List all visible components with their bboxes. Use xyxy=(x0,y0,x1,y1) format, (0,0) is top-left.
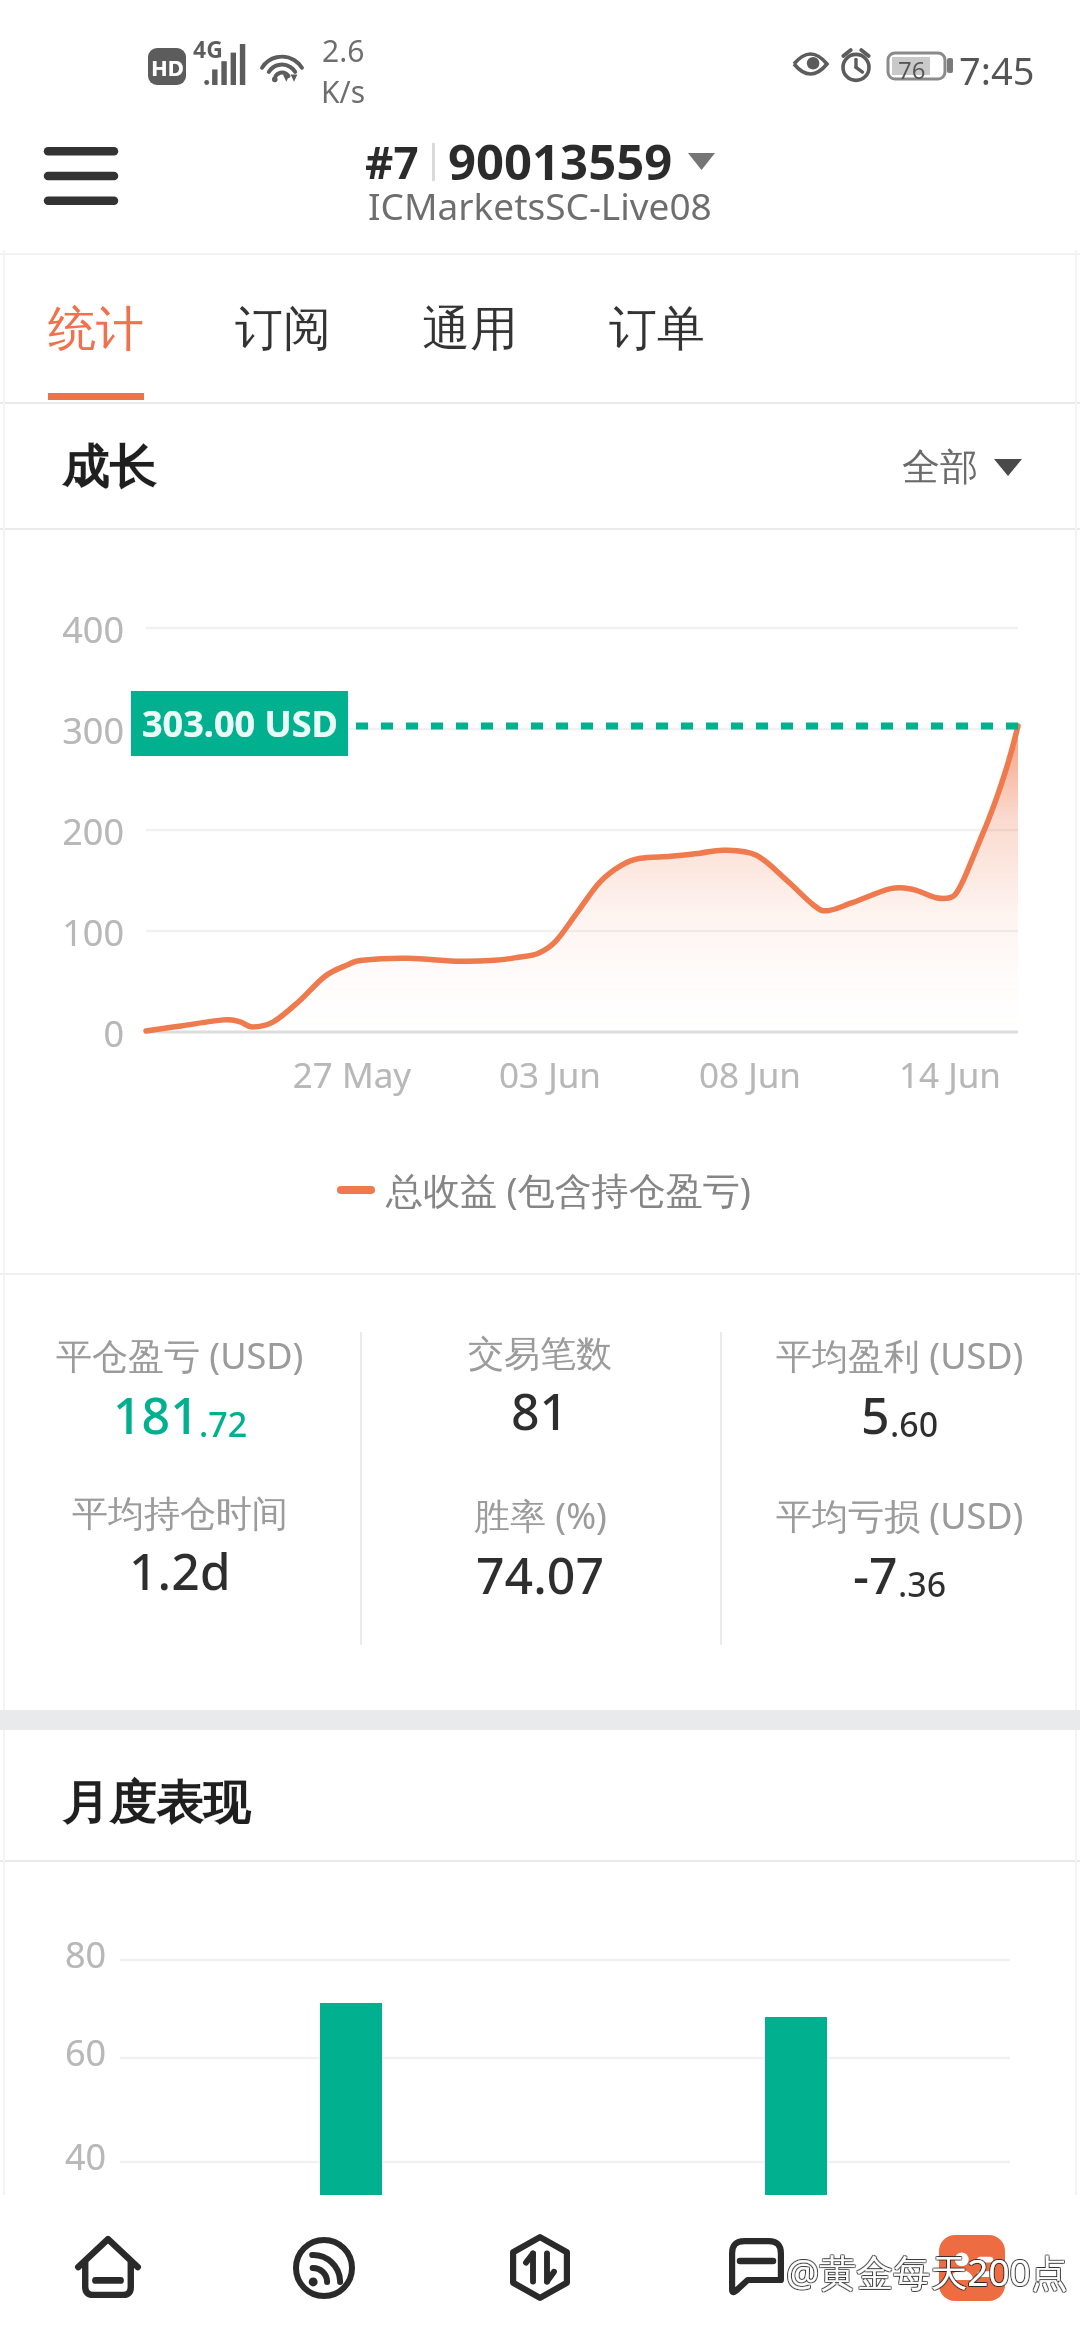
staticText: 14 Jun xyxy=(860,1051,1040,1099)
staticText: HD xyxy=(151,52,184,82)
button[interactable]: 订阅 xyxy=(235,255,331,404)
staticText: 总收益 (包含持仓盈亏) xyxy=(386,1164,751,1215)
staticText: #7 xyxy=(365,132,419,192)
button[interactable]: Trade xyxy=(432,2195,648,2340)
staticText: @黄金每天200点 xyxy=(786,2245,1068,2296)
staticText: 统计 xyxy=(48,299,144,359)
button[interactable]: 订单 xyxy=(609,255,705,404)
button[interactable]: Home xyxy=(0,2195,216,2340)
staticText: 303.00 USD xyxy=(142,699,338,748)
staticText: 5 xyxy=(861,1381,890,1449)
button[interactable]: #7 xyxy=(365,128,715,245)
staticText: 90013559 xyxy=(448,128,673,195)
staticText: 300 xyxy=(0,706,124,755)
staticText: @黄金每天200点 xyxy=(787,2247,1069,2298)
staticText: 订单 xyxy=(609,299,705,359)
staticText: @黄金每天200点 xyxy=(786,2247,1068,2298)
staticText: 月度表现 xyxy=(62,1774,250,1833)
staticText: .36 xyxy=(898,1561,947,1607)
staticText: 1.2d xyxy=(129,1537,231,1605)
button[interactable]: Menu xyxy=(28,123,133,228)
button[interactable]: 全部 xyxy=(902,443,1022,491)
staticText: -7 xyxy=(853,1541,898,1609)
staticText: 成长 xyxy=(62,438,156,497)
staticText: 交易笔数 xyxy=(468,1331,612,1376)
button[interactable]: Chat xyxy=(648,2195,864,2340)
staticText: 0 xyxy=(0,1009,124,1058)
staticText: 平均亏损 (USD) xyxy=(776,1491,1024,1540)
staticText: .72 xyxy=(199,1401,248,1447)
staticText: 胜率 (%) xyxy=(474,1491,607,1540)
staticText: @黄金每天200点 xyxy=(785,2247,1067,2298)
staticText: 80 xyxy=(65,1930,107,1979)
staticText: 4G xyxy=(193,33,223,64)
staticText: 2.6 xyxy=(322,30,365,71)
staticText: 27 May xyxy=(262,1051,442,1099)
staticText: 03 Jun xyxy=(460,1051,640,1099)
staticText: 74.07 xyxy=(476,1541,604,1609)
staticText: 400 xyxy=(0,605,124,654)
staticText: 订阅 xyxy=(235,299,331,359)
button[interactable]: Quotes xyxy=(216,2195,432,2340)
staticText: @黄金每天200点 xyxy=(787,2246,1069,2297)
staticText: ICMarketsSC-Live08 xyxy=(368,180,712,230)
staticText: K/s xyxy=(321,71,366,112)
staticText: 100 xyxy=(0,908,124,957)
button[interactable]: 统计 xyxy=(48,255,144,404)
staticText: 76 xyxy=(898,53,926,79)
staticText: 全部 xyxy=(902,443,978,491)
staticText: @黄金每天200点 xyxy=(785,2246,1067,2297)
staticText: 181 xyxy=(113,1381,199,1449)
staticText: 平均盈利 (USD) xyxy=(776,1331,1024,1380)
staticText: 08 Jun xyxy=(660,1051,840,1099)
button[interactable]: Profile xyxy=(864,2195,1080,2340)
staticText: 200 xyxy=(0,807,124,856)
staticText: 通用 xyxy=(422,299,518,359)
staticText: 7:45 xyxy=(959,44,1035,96)
staticText: @黄金每天200点 xyxy=(787,2245,1069,2296)
button[interactable]: 通用 xyxy=(422,255,518,404)
staticText: 平仓盈亏 (USD) xyxy=(56,1331,304,1380)
staticText: @黄金每天200点 xyxy=(785,2245,1067,2296)
staticText: 60 xyxy=(65,2028,107,2077)
staticText: @黄金每天200点 xyxy=(786,2246,1068,2297)
staticText: 平均持仓时间 xyxy=(72,1491,288,1536)
staticText: 81 xyxy=(511,1377,569,1445)
staticText: .60 xyxy=(890,1401,939,1447)
staticText: 40 xyxy=(65,2132,107,2181)
